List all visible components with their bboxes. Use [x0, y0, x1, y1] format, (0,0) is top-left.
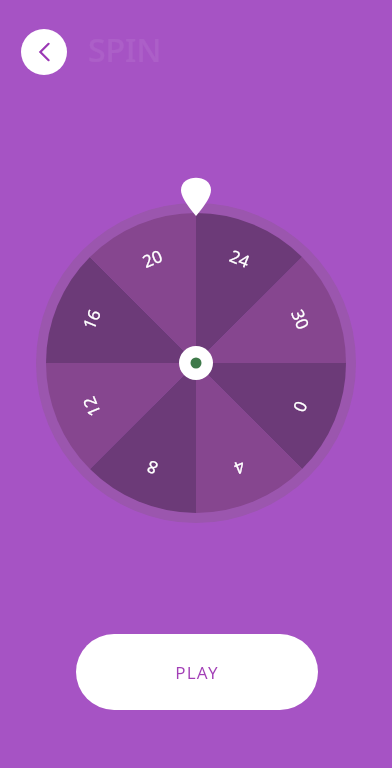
staticText: 24 — [226, 244, 253, 273]
staticText: PLAY — [175, 661, 219, 684]
staticText: 20 — [139, 244, 166, 273]
staticText: 16 — [77, 306, 106, 333]
staticText: 0 — [288, 398, 313, 416]
button[interactable]: Back — [21, 29, 67, 75]
staticText: SPIN — [88, 28, 162, 72]
button[interactable]: Spin wheel — [0, 0, 392, 768]
staticText: 12 — [77, 393, 106, 420]
button[interactable]: PLAY — [76, 634, 318, 710]
staticText: 4 — [231, 455, 249, 480]
staticText: 30 — [286, 306, 315, 333]
staticText: 8 — [143, 455, 161, 480]
